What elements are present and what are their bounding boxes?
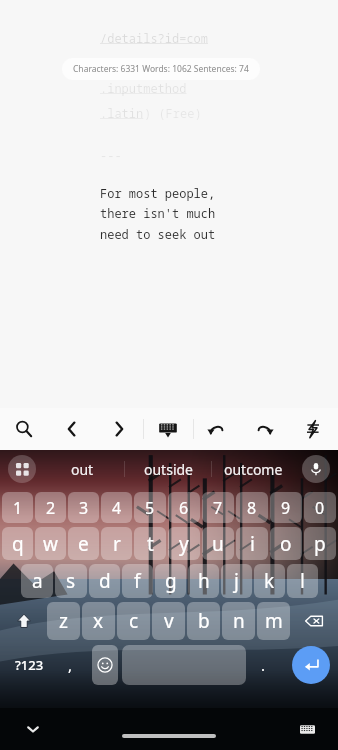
button[interactable]: . xyxy=(250,642,276,688)
staticText: ) (Free) xyxy=(144,105,202,121)
staticText: outcome xyxy=(224,460,283,479)
staticText: out xyxy=(71,460,94,479)
staticText: s xyxy=(66,568,76,594)
button[interactable]: 3 xyxy=(68,492,99,523)
staticText: , xyxy=(68,655,73,675)
button[interactable]: outcome xyxy=(211,450,295,488)
staticText: 0 xyxy=(315,497,325,519)
button[interactable]: e xyxy=(68,527,99,560)
button[interactable]: f xyxy=(122,564,153,598)
button[interactable]: , xyxy=(56,642,84,688)
staticText: e xyxy=(78,531,89,557)
button[interactable]: c xyxy=(117,602,150,640)
staticText: .inputmethod xyxy=(100,80,187,96)
button[interactable]: outside xyxy=(126,450,210,488)
staticText: f xyxy=(134,568,141,594)
button[interactable]: 8 xyxy=(236,492,268,523)
button[interactable]: 7 xyxy=(202,492,234,523)
staticText: d xyxy=(99,568,111,594)
button[interactable]: 5 xyxy=(134,492,166,523)
staticText: z xyxy=(59,608,68,634)
button[interactable]: t xyxy=(134,527,166,560)
button[interactable]: 6 xyxy=(168,492,200,523)
staticText: j xyxy=(234,568,239,594)
button[interactable]: Voice input xyxy=(302,455,330,483)
button[interactable]: Backspace xyxy=(292,600,336,642)
staticText: outside xyxy=(144,460,193,479)
staticText: o xyxy=(280,531,292,557)
button[interactable]: k xyxy=(254,564,285,598)
button[interactable]: a xyxy=(21,564,53,598)
staticText: a xyxy=(32,568,43,594)
button[interactable]: Next xyxy=(98,408,140,450)
staticText: 3 xyxy=(79,497,89,519)
staticText: k xyxy=(264,568,275,594)
button[interactable]: 9 xyxy=(270,492,302,523)
button[interactable]: g xyxy=(155,564,186,598)
button[interactable]: Enter xyxy=(292,646,330,684)
staticText: 2 xyxy=(46,497,56,519)
button[interactable]: q xyxy=(2,527,33,560)
staticText: m xyxy=(265,608,283,634)
button[interactable]: Undo xyxy=(195,408,237,450)
staticText: g xyxy=(165,568,177,594)
button[interactable]: Shortcuts xyxy=(292,408,334,450)
button[interactable]: y xyxy=(168,527,200,560)
staticText: i xyxy=(250,531,255,557)
button[interactable]: Toolbar xyxy=(8,455,36,483)
button[interactable]: Switch input method xyxy=(290,712,324,746)
staticText: /details?id=com xyxy=(100,30,209,46)
button[interactable]: out xyxy=(40,450,124,488)
staticText: . xyxy=(261,655,266,675)
button[interactable]: v xyxy=(152,602,185,640)
button[interactable]: j xyxy=(221,564,252,598)
button[interactable]: i xyxy=(236,527,268,560)
button[interactable]: 4 xyxy=(101,492,132,523)
button[interactable]: 0 xyxy=(304,492,336,523)
button[interactable]: m xyxy=(257,602,290,640)
staticText: 6 xyxy=(179,497,189,519)
button[interactable]: p xyxy=(304,527,336,560)
staticText: h xyxy=(198,568,210,594)
button[interactable]: o xyxy=(270,527,302,560)
staticText: .openboard xyxy=(100,55,173,71)
button[interactable]: s xyxy=(55,564,87,598)
button[interactable]: Space xyxy=(122,645,246,685)
staticText: .latin xyxy=(100,105,144,121)
staticText: p xyxy=(314,531,326,557)
staticText: Characters: 6331 Words: 1062 Sentences: … xyxy=(73,63,249,75)
button[interactable]: l xyxy=(287,564,318,598)
staticText: x xyxy=(93,608,104,634)
staticText: n xyxy=(233,608,245,634)
button[interactable]: Redo xyxy=(244,408,286,450)
button[interactable]: b xyxy=(187,602,220,640)
button[interactable]: w xyxy=(35,527,66,560)
button[interactable]: ?123 xyxy=(6,642,52,688)
button[interactable]: r xyxy=(101,527,132,560)
button[interactable]: Previous xyxy=(51,408,93,450)
staticText: ?123 xyxy=(15,656,44,674)
button[interactable]: 2 xyxy=(35,492,66,523)
button[interactable]: u xyxy=(202,527,234,560)
staticText: 1 xyxy=(13,497,23,519)
staticText: 5 xyxy=(145,497,155,519)
button[interactable]: 1 xyxy=(2,492,33,523)
staticText: For most people, there isn't much need t… xyxy=(100,185,216,243)
button[interactable]: Emoji xyxy=(92,645,118,685)
button[interactable]: n xyxy=(222,602,255,640)
button[interactable]: Shift xyxy=(2,600,45,642)
staticText: 9 xyxy=(281,497,291,519)
button[interactable]: h xyxy=(188,564,219,598)
staticText: l xyxy=(300,568,305,594)
staticText: q xyxy=(12,531,24,557)
button[interactable]: Hide keyboard xyxy=(16,712,50,746)
staticText: y xyxy=(179,531,189,557)
staticText: r xyxy=(113,531,121,557)
button[interactable]: z xyxy=(47,602,80,640)
button[interactable]: Hide keyboard xyxy=(147,408,189,450)
staticText: t xyxy=(147,531,154,557)
button[interactable]: d xyxy=(89,564,120,598)
button[interactable]: x xyxy=(82,602,115,640)
button[interactable]: Search xyxy=(3,408,45,450)
